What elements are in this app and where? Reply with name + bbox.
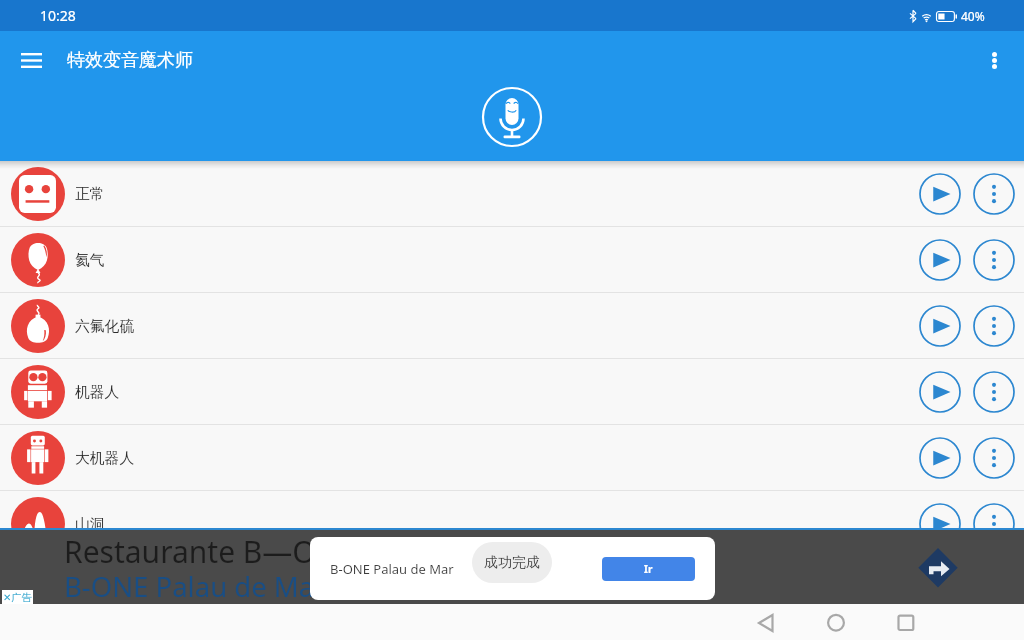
button[interactable]: 正常 <box>0 161 1024 226</box>
staticText: ✕广告 <box>3 591 32 604</box>
staticText: 10:28 <box>40 6 76 25</box>
button[interactable]: Play <box>919 437 961 479</box>
button[interactable]: Record <box>482 87 542 147</box>
staticText: 六氟化硫 <box>75 317 135 336</box>
button[interactable]: More <box>973 503 1015 545</box>
button[interactable]: More options <box>974 40 1014 80</box>
button[interactable]: Back <box>742 604 1024 640</box>
button[interactable]: Recents <box>882 604 1024 640</box>
staticText: 大机器人 <box>75 449 135 468</box>
staticText: 40% <box>961 8 985 24</box>
button[interactable]: Play <box>919 305 961 347</box>
staticText: 山洞 <box>75 515 105 534</box>
button[interactable]: Ir <box>602 557 695 581</box>
button[interactable]: More <box>973 173 1015 215</box>
staticText: 成功完成 <box>484 554 540 572</box>
button[interactable]: Home <box>812 604 1024 640</box>
button[interactable]: More <box>973 305 1015 347</box>
staticText: B-ONE Palau de Mar <box>330 560 454 578</box>
staticText: Restaurante B—One <box>64 531 352 572</box>
button[interactable]: 六氟化硫 <box>0 293 1024 358</box>
button[interactable]: More <box>973 437 1015 479</box>
staticText: B-ONE Palau de Mar <box>64 568 326 605</box>
button[interactable]: More <box>973 239 1015 281</box>
button[interactable]: Play <box>919 173 961 215</box>
staticText: 机器人 <box>75 383 120 402</box>
staticText: 正常 <box>75 185 105 204</box>
button[interactable]: 山洞 <box>0 491 1024 556</box>
button[interactable]: Play <box>919 503 961 545</box>
staticText: Ir <box>644 562 653 576</box>
staticText: 特效变音魔术师 <box>67 49 193 72</box>
button[interactable]: Menu <box>11 40 51 80</box>
button[interactable]: Play <box>919 371 961 413</box>
button[interactable]: 大机器人 <box>0 425 1024 490</box>
button[interactable]: Play <box>919 239 961 281</box>
button[interactable]: Close ad <box>2 590 33 604</box>
button[interactable]: 氦气 <box>0 227 1024 292</box>
button[interactable]: 机器人 <box>0 359 1024 424</box>
button[interactable]: More <box>973 371 1015 413</box>
staticText: 氦气 <box>75 251 105 270</box>
